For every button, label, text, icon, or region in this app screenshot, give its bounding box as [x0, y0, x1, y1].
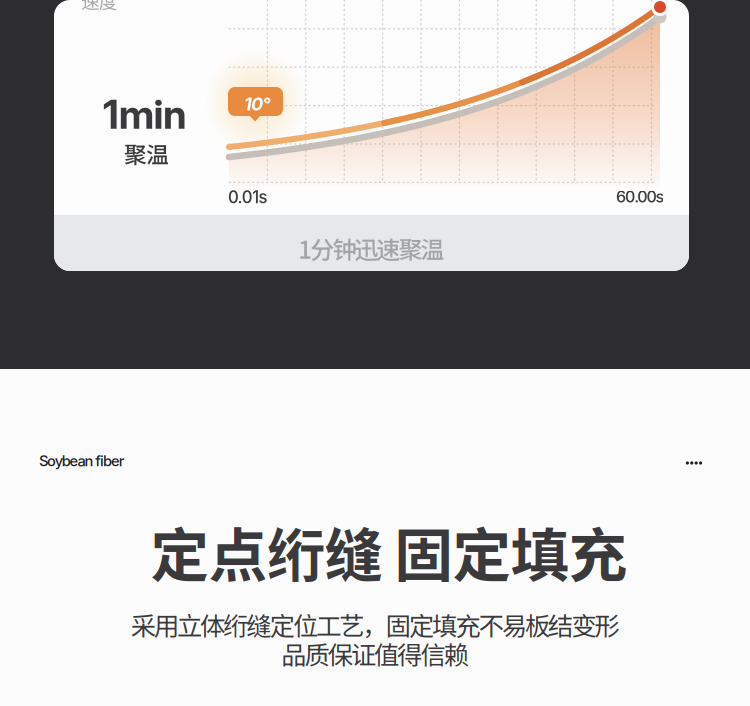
staticText: 1分钟迅速聚温 — [298, 231, 445, 266]
staticText: 定点绗缝 固定填充 — [150, 509, 627, 594]
staticText: 聚温 — [124, 137, 169, 170]
staticText: 0.01s — [228, 187, 268, 207]
button[interactable]: More — [674, 449, 714, 477]
staticText: 1min — [103, 90, 187, 138]
staticText: 品质保证值得信赖 — [281, 635, 469, 672]
staticText: Soybean fiber — [39, 452, 125, 470]
staticText: 10° — [244, 93, 270, 115]
staticText: 采用立体绗缝定位工艺，固定填充不易板结变形 — [130, 606, 619, 643]
staticText: 速度 — [81, 0, 118, 14]
staticText: 60.00s — [616, 187, 664, 206]
